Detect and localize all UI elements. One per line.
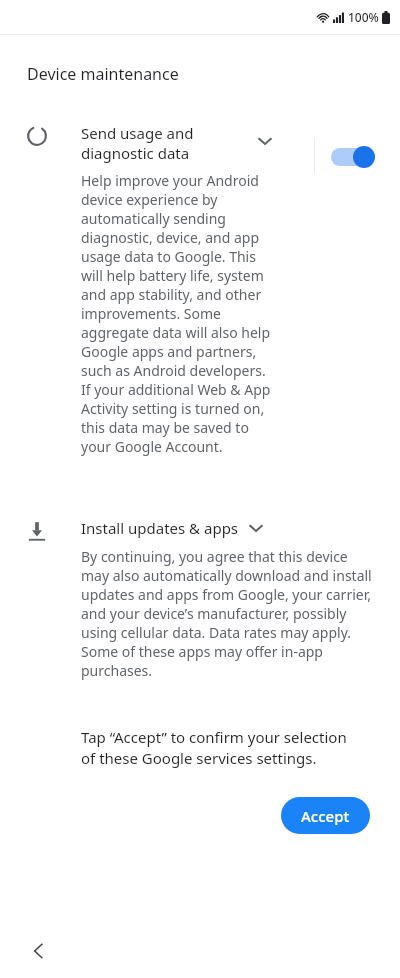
button[interactable]: Send usage and diagnostic data toggle (327, 142, 379, 172)
staticText: Device maintenance (27, 63, 179, 85)
other: Collapse (256, 132, 274, 150)
staticText: Help improve your Android device experie… (81, 171, 273, 456)
staticText: Install updates & apps (81, 518, 239, 538)
staticText: Accept (301, 806, 350, 826)
staticText: By continuing, you agree that this devic… (81, 547, 373, 680)
staticText: Send usage and diagnostic data (81, 123, 256, 163)
staticText: 100% (348, 9, 379, 25)
other: Collapse (247, 519, 265, 537)
button[interactable]: Accept (281, 797, 370, 834)
button[interactable]: Install updates & apps (81, 518, 265, 538)
button[interactable]: Send usage and diagnostic data (81, 123, 307, 163)
staticText: Tap “Accept” to confirm your selection o… (81, 727, 359, 769)
button[interactable]: Back (22, 934, 56, 968)
